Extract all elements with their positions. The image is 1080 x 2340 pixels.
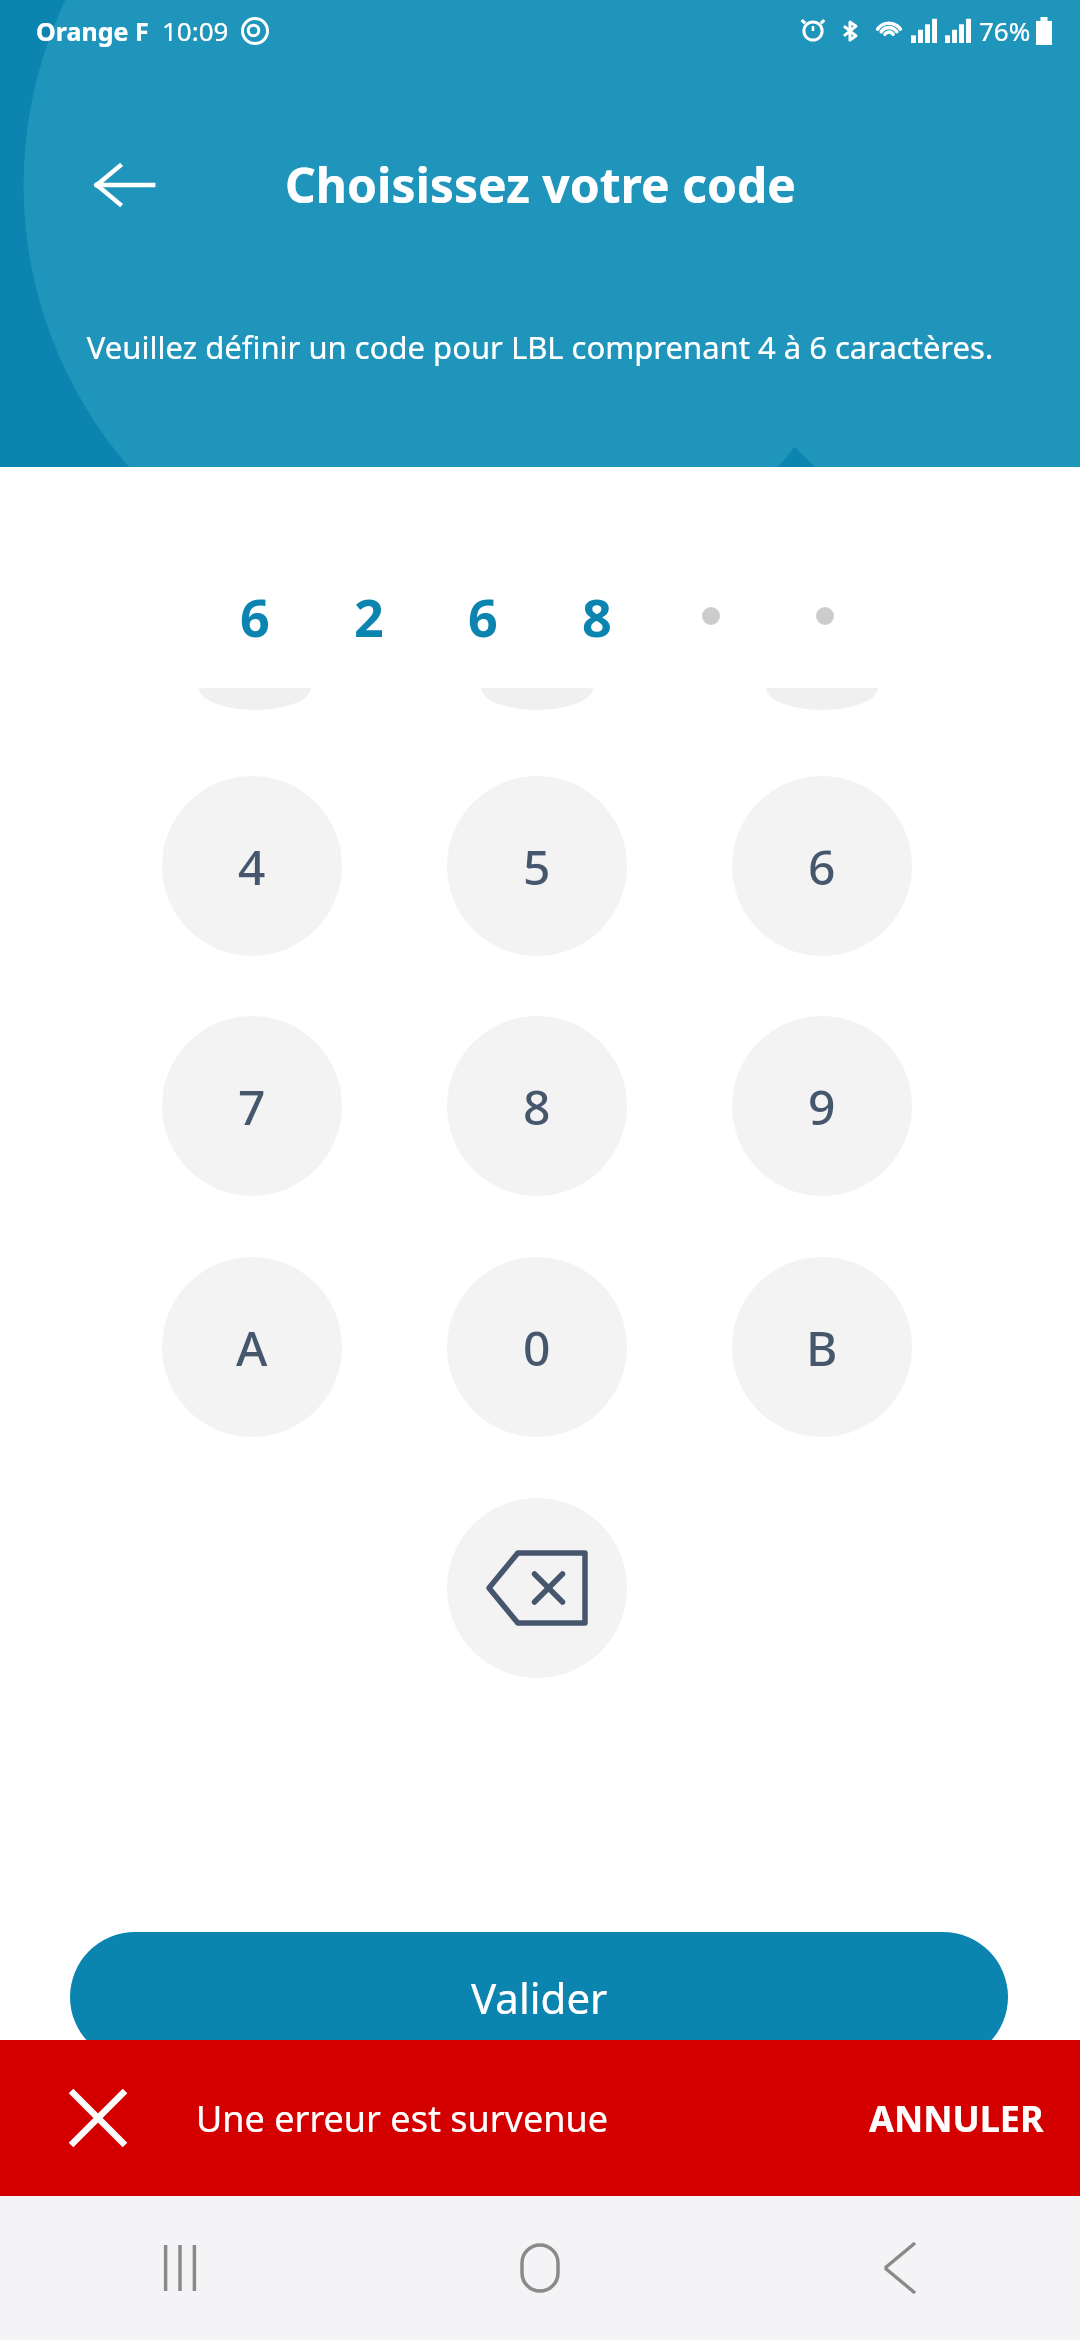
staticText: Veuillez définir un code pour LBL compre… xyxy=(66,326,1014,368)
staticText: 2 xyxy=(354,581,384,652)
button[interactable]: B xyxy=(732,1257,912,1437)
button[interactable]: Retour xyxy=(60,120,190,250)
staticText: ANNULER xyxy=(869,2094,1044,2143)
staticText: 8 xyxy=(523,1074,551,1139)
button[interactable]: 0 xyxy=(447,1257,627,1437)
staticText: 8 xyxy=(582,581,612,652)
staticText: A xyxy=(236,1315,268,1380)
staticText: 7 xyxy=(238,1074,266,1139)
button[interactable]: Retour xyxy=(720,2196,1080,2340)
button[interactable]: 9 xyxy=(732,1016,912,1196)
button[interactable]: 4 xyxy=(162,776,342,956)
staticText: 6 xyxy=(808,834,836,899)
staticText: 10:09 xyxy=(162,13,229,48)
staticText: 6 xyxy=(468,581,498,652)
button[interactable]: A xyxy=(162,1257,342,1437)
button[interactable]: 7 xyxy=(162,1016,342,1196)
staticText: 0 xyxy=(523,1315,551,1380)
staticText: B xyxy=(806,1315,838,1380)
staticText: 6 xyxy=(240,581,270,652)
staticText: Orange F xyxy=(36,14,149,48)
button[interactable]: 8 xyxy=(447,1016,627,1196)
button[interactable]: Valider xyxy=(70,1932,1008,2062)
button[interactable]: ANNULER xyxy=(833,2040,1080,2196)
staticText: 5 xyxy=(523,834,551,899)
button[interactable]: Effacer xyxy=(447,1498,627,1678)
staticText: 4 xyxy=(238,834,266,899)
staticText: 9 xyxy=(808,1074,836,1139)
staticText: Choisissez votre code xyxy=(285,152,796,217)
button[interactable]: Accueil xyxy=(360,2196,720,2340)
button[interactable]: 5 xyxy=(447,776,627,956)
button[interactable]: Applications récentes xyxy=(0,2196,360,2340)
button[interactable]: Fermer xyxy=(0,2040,196,2196)
button[interactable]: 6 xyxy=(732,776,912,956)
staticText: 76% xyxy=(979,13,1031,48)
staticText: Valider xyxy=(471,1969,608,2026)
staticText: Une erreur est survenue xyxy=(196,2094,608,2143)
